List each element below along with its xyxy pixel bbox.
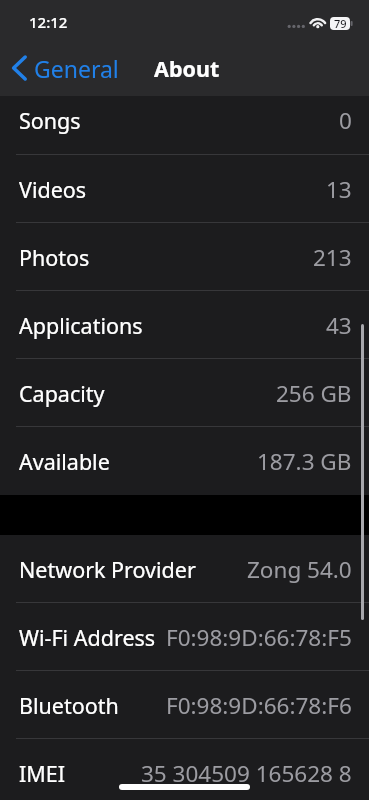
staticText: General [34,53,119,84]
staticText: 213 [313,242,352,273]
button[interactable]: Videos [0,155,369,223]
staticText: F0:98:9D:66:78:F6 [166,690,352,721]
staticText: 256 GB [276,378,352,409]
button[interactable]: Back to General [11,48,119,88]
staticText: Songs [19,106,81,135]
staticText: IMEI [19,759,66,788]
button[interactable]: Songs [0,86,369,155]
button[interactable]: Applications [0,291,369,359]
button[interactable]: Wi-Fi Address [0,603,369,671]
staticText: Applications [19,311,143,340]
other: Back to General [11,55,28,81]
staticText: Zong 54.0 [247,554,352,585]
button[interactable]: Available [0,427,369,495]
staticText: 35 304509 165628 8 [141,758,352,789]
staticText: 43 [326,310,352,341]
button[interactable]: IMEI [0,739,369,800]
button[interactable]: Network Provider [0,535,369,603]
staticText: 187.3 GB [257,446,352,477]
staticText: 12:12 [29,12,68,32]
staticText: Photos [19,243,90,272]
staticText: 79 [334,16,347,31]
staticText: Bluetooth [19,691,119,720]
staticText: Capacity [19,379,105,408]
button[interactable]: Bluetooth [0,671,369,739]
button[interactable]: Capacity [0,359,369,427]
staticText: Network Provider [19,555,196,584]
staticText: Wi-Fi Address [19,623,156,652]
button[interactable]: Photos [0,223,369,291]
staticText: Videos [19,175,87,204]
staticText: 0 [339,105,352,136]
staticText: Available [19,447,110,476]
staticText: 13 [326,174,352,205]
staticText: F0:98:9D:66:78:F5 [166,622,352,653]
staticText: About [154,54,220,83]
